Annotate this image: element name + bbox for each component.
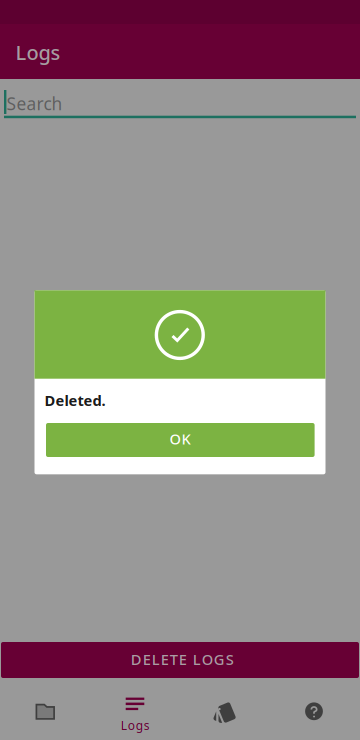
button[interactable]: Help [270,684,360,740]
staticText: D E L E T E L O G S [131,650,234,669]
staticText: L o g s [121,717,150,733]
button[interactable]: D E L E T E L O G S [1,642,359,678]
button[interactable]: Files [0,684,90,740]
staticText: Logs [15,39,60,66]
button[interactable]: Themes [180,684,270,740]
staticText: Deleted. [44,390,105,410]
button[interactable]: L o g s [90,684,180,740]
button[interactable]: O K [46,423,315,457]
staticText: Search [6,92,62,115]
staticText: O K [169,429,190,448]
